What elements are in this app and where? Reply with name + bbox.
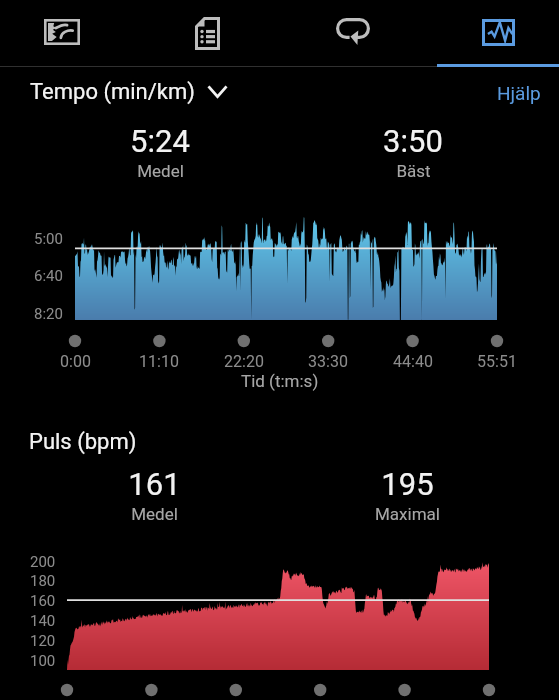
staticText: 8:20 bbox=[34, 305, 63, 323]
staticText: 5:00 bbox=[34, 230, 63, 248]
staticText: 3:50 bbox=[383, 123, 443, 159]
staticText: 180 bbox=[30, 572, 56, 590]
staticText: 55:51 bbox=[477, 352, 517, 371]
staticText: 120 bbox=[30, 632, 56, 650]
button[interactable]: Map bbox=[0, 0, 134, 66]
staticText: 195 bbox=[381, 466, 434, 502]
button[interactable]: Laps bbox=[281, 0, 425, 66]
staticText: 0:00 bbox=[60, 352, 91, 371]
staticText: 5:24 bbox=[130, 123, 190, 159]
staticText: 11:10 bbox=[139, 352, 179, 371]
staticText: 22:20 bbox=[224, 352, 264, 371]
button[interactable]: Hjälp bbox=[497, 81, 557, 105]
staticText: 200 bbox=[30, 553, 56, 571]
staticText: 33:30 bbox=[308, 352, 348, 371]
staticText: 44:40 bbox=[393, 352, 433, 371]
button[interactable]: Charts bbox=[426, 0, 559, 66]
staticText: Tempo (min/km) bbox=[30, 79, 195, 105]
staticText: 6:40 bbox=[34, 267, 63, 285]
staticText: 140 bbox=[30, 612, 56, 630]
staticText: Bäst bbox=[396, 161, 431, 181]
staticText: Medel bbox=[137, 161, 184, 181]
staticText: 160 bbox=[30, 592, 56, 610]
button[interactable]: Tempo (min/km) bbox=[30, 79, 227, 105]
staticText: Puls (bpm) bbox=[29, 429, 137, 455]
staticText: Maximal bbox=[375, 504, 440, 524]
staticText: Hjälp bbox=[497, 82, 541, 104]
button[interactable]: Details bbox=[135, 0, 279, 66]
staticText: Tid (t:m:s) bbox=[241, 371, 319, 391]
staticText: 161 bbox=[128, 466, 181, 502]
staticText: Medel bbox=[131, 504, 178, 524]
staticText: 100 bbox=[30, 652, 56, 670]
